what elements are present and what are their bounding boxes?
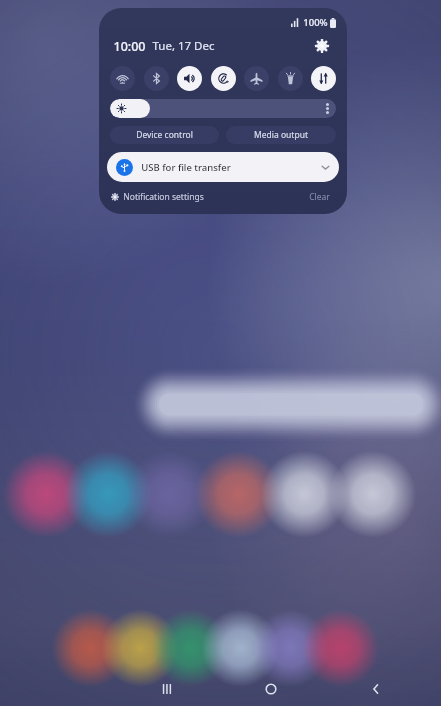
staticText: Media output <box>254 129 308 141</box>
staticText: Tue, 17 Dec <box>152 38 215 54</box>
button[interactable]: USB for file transfer <box>107 152 339 182</box>
staticText: USB for file transfer <box>141 161 231 174</box>
button[interactable]: Back <box>359 672 393 706</box>
staticText: 100% <box>303 16 328 29</box>
button[interactable]: Brightness <box>110 99 336 118</box>
button[interactable]: Settings <box>309 33 335 59</box>
button[interactable]: Recent apps <box>149 672 183 706</box>
button[interactable]: Notification settings <box>109 189 206 205</box>
button[interactable]: Clear <box>306 189 333 205</box>
staticText: Notification settings <box>123 191 204 203</box>
button[interactable]: Home <box>254 672 288 706</box>
button[interactable]: Device control <box>110 126 219 144</box>
button[interactable]: Media output <box>226 126 336 144</box>
button[interactable]: Sound <box>177 66 202 91</box>
staticText: Device control <box>136 129 193 141</box>
button[interactable]: Mobile data <box>311 66 336 91</box>
staticText: Clear <box>309 191 330 203</box>
staticText: 10:00 <box>113 38 146 55</box>
button[interactable]: Auto rotate <box>211 66 236 91</box>
button[interactable]: Flashlight <box>278 66 303 91</box>
button[interactable]: Bluetooth <box>144 66 169 91</box>
button[interactable]: Airplane mode <box>244 66 269 91</box>
button[interactable]: Wi-Fi <box>110 66 135 91</box>
